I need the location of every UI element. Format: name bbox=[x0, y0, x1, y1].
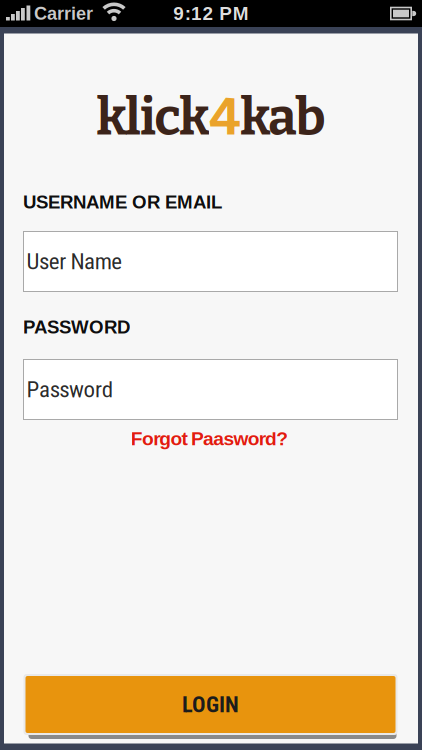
button[interactable]: User Name bbox=[23, 231, 397, 291]
staticText: 4 bbox=[209, 87, 240, 148]
staticText: Carrier bbox=[34, 3, 93, 24]
button[interactable]: Forgot Paasword? bbox=[131, 428, 288, 449]
staticText: USERNAME OR EMAIL bbox=[23, 192, 222, 212]
staticText: 9:12 PM bbox=[173, 3, 249, 24]
staticText: kab bbox=[240, 87, 326, 148]
button[interactable]: LOGIN bbox=[23, 673, 397, 738]
staticText: User Name bbox=[26, 248, 122, 275]
staticText: Forgot Paasword? bbox=[131, 428, 288, 449]
staticText: PASSWORD bbox=[23, 317, 130, 337]
button[interactable]: Password bbox=[23, 359, 397, 419]
staticText: LOGIN bbox=[182, 691, 239, 718]
staticText: Password bbox=[26, 376, 113, 403]
staticText: klick bbox=[96, 87, 209, 148]
